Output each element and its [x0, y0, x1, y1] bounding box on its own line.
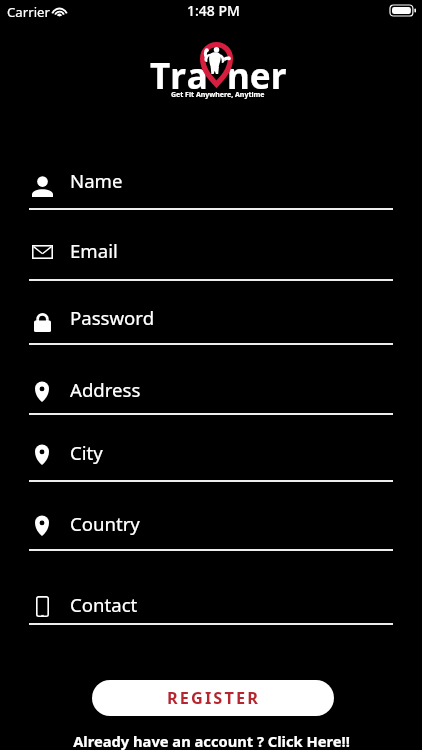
staticText: Address [70, 377, 141, 402]
button[interactable]: Email [29, 223, 393, 282]
other: Password [34, 312, 51, 332]
staticText: City [70, 440, 103, 465]
other: Wi-Fi [51, 5, 68, 17]
button[interactable]: REGISTER [92, 680, 334, 716]
button[interactable]: Already have an account ? Click Here!! [0, 731, 422, 750]
other: Email [32, 245, 53, 259]
other: Location [35, 381, 49, 402]
staticText: Contact [70, 592, 138, 617]
button[interactable]: Contact [29, 577, 393, 626]
button[interactable]: Location [29, 496, 393, 552]
button[interactable]: Password [29, 290, 393, 346]
staticText: Carrier [7, 3, 50, 21]
staticText: Get Fit Anywhere, Anytime [171, 90, 265, 100]
staticText: 1:48 PM [187, 1, 240, 20]
button[interactable]: Location [29, 362, 393, 416]
other: Location [35, 444, 49, 465]
button[interactable]: Name [29, 153, 393, 211]
staticText: Email [70, 238, 118, 263]
other: Location [35, 515, 49, 536]
staticText: ner [227, 52, 287, 100]
staticText: Already have an account ? Click Here!! [73, 731, 350, 750]
button[interactable]: Location [29, 425, 393, 483]
other: Name [32, 176, 53, 197]
staticText: Tra [150, 52, 210, 100]
staticText: REGISTER [167, 687, 260, 709]
other: Contact [36, 596, 49, 617]
staticText: Name [70, 168, 123, 193]
staticText: Password [70, 305, 155, 330]
staticText: Country [70, 511, 140, 536]
